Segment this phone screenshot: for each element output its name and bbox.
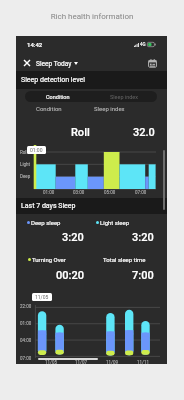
staticText: 11/07 <box>75 360 87 365</box>
staticText: 07:00 <box>20 356 32 361</box>
button[interactable]: Condition <box>25 91 91 102</box>
staticText: 01:00 <box>43 190 55 195</box>
staticText: 11/05 <box>35 294 49 300</box>
staticText: Deep sleep <box>31 219 61 226</box>
staticText: Sleep detection level <box>21 76 85 84</box>
button[interactable]: Sleep index <box>91 91 157 102</box>
staticText: 07:00 <box>135 190 147 195</box>
staticText: 32.0 <box>133 126 155 139</box>
staticText: Condition <box>36 105 62 112</box>
staticText: Total sleep time <box>103 256 146 263</box>
staticText: Deep <box>20 174 31 179</box>
staticText: 00:20 <box>56 269 84 282</box>
staticText: Light sleep <box>100 219 130 226</box>
staticText: 4G <box>140 42 146 47</box>
staticText: Roll <box>20 150 28 155</box>
staticText: Last 7 days Sleep <box>21 202 76 210</box>
staticText: Sleep index <box>110 94 139 100</box>
staticText: 11/09 <box>106 360 118 365</box>
button[interactable]: Calendar <box>145 56 160 71</box>
staticText: 11/11 <box>137 360 149 365</box>
staticText: 03:00 <box>73 190 85 195</box>
staticText: Roll <box>71 126 90 139</box>
button[interactable]: Sleep Today <box>34 58 80 69</box>
button[interactable]: Close <box>20 56 34 70</box>
staticText: 01:00 <box>20 321 32 326</box>
staticText: Sleep index <box>94 105 125 112</box>
staticText: 7:00 <box>132 269 154 282</box>
staticText: 3:20 <box>132 231 154 244</box>
staticText: 11/05 <box>45 360 57 365</box>
staticText: Light <box>20 162 30 167</box>
staticText: Rich health information <box>0 12 184 21</box>
staticText: 04:00 <box>20 338 32 343</box>
staticText: 05:00 <box>104 190 116 195</box>
staticText: 14:42 <box>27 41 43 48</box>
staticText: 3:20 <box>62 231 84 244</box>
staticText: Sleep Today <box>36 60 72 68</box>
staticText: Turning Over <box>32 256 66 263</box>
staticText: 01:00 <box>30 147 43 153</box>
staticText: 22:00 <box>20 304 32 309</box>
staticText: Condition <box>46 94 70 100</box>
